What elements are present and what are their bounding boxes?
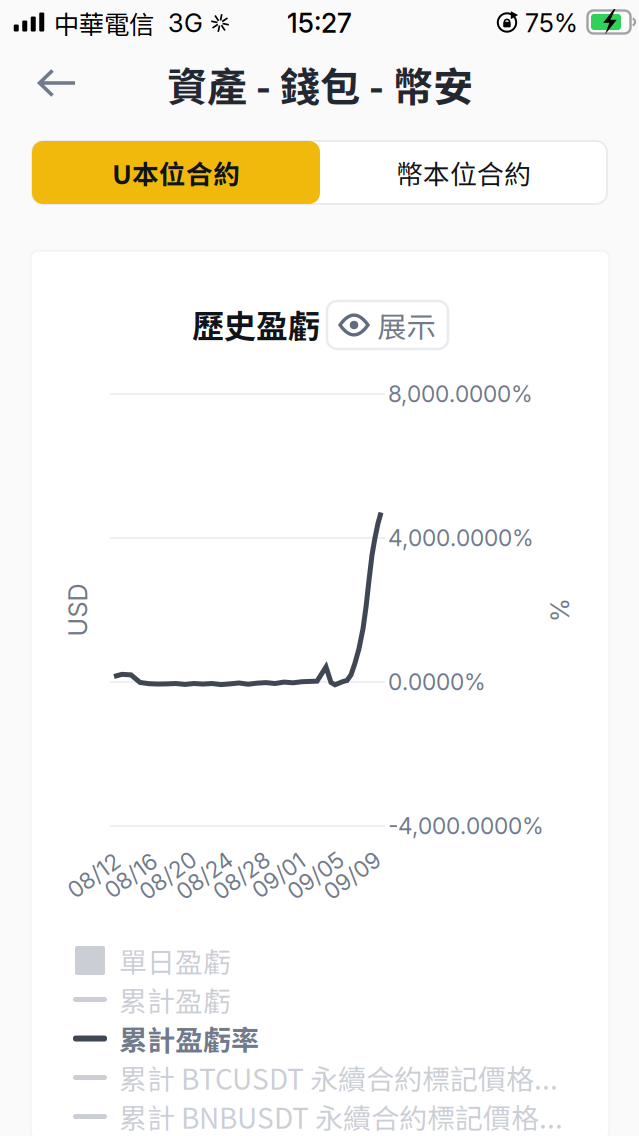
staticText: 8,000.0000% <box>388 380 533 408</box>
staticText: 4,000.0000% <box>388 524 534 552</box>
staticText: 幣本位合約 <box>396 153 531 192</box>
staticText: % <box>548 595 572 625</box>
staticText: 展示 <box>377 304 435 346</box>
button[interactable]: 展示 <box>327 301 448 349</box>
button[interactable]: 累計盈虧 <box>73 980 583 1019</box>
button[interactable]: 累計 BNBUSDT 永續合約標記價格... <box>73 1097 583 1136</box>
staticText: -4,000.0000% <box>388 812 544 840</box>
staticText: 09/01 <box>249 862 308 889</box>
staticText: 09/09 <box>320 862 384 889</box>
staticText: 3G <box>168 8 203 38</box>
staticText: 08/12 <box>64 862 123 889</box>
staticText: USD <box>51 595 104 625</box>
staticText: 08/24 <box>173 862 237 889</box>
staticText: U本位合約 <box>112 153 240 192</box>
staticText: 08/20 <box>136 862 200 889</box>
staticText: 累計盈虧率 <box>119 1018 259 1059</box>
staticText: 08/16 <box>101 862 160 889</box>
staticText: 08/28 <box>210 862 274 889</box>
staticText: 累計 BNBUSDT 永續合約標記價格... <box>119 1096 563 1136</box>
staticText: 中華電信 <box>54 5 154 41</box>
button[interactable]: Back <box>22 62 92 104</box>
staticText: 累計 BTCUSDT 永續合約標記價格... <box>119 1057 558 1098</box>
staticText: 單日盈虧 <box>119 940 231 981</box>
staticText: 0.0000% <box>388 668 486 696</box>
button[interactable]: 累計盈虧率 <box>73 1019 583 1058</box>
button[interactable]: 單日盈虧 <box>73 941 583 980</box>
staticText: 15:27 <box>287 7 352 39</box>
button[interactable]: 幣本位合約 <box>320 141 607 204</box>
button[interactable]: 累計 BTCUSDT 永續合約標記價格... <box>73 1058 583 1097</box>
staticText: 75% <box>525 8 578 38</box>
staticText: 09/05 <box>284 862 347 889</box>
staticText: 累計盈虧 <box>119 979 231 1020</box>
staticText: 歷史盈虧 <box>192 301 320 347</box>
staticText: 資產 - 錢包 - 幣安 <box>167 55 473 113</box>
button[interactable]: U本位合約 <box>32 141 320 204</box>
